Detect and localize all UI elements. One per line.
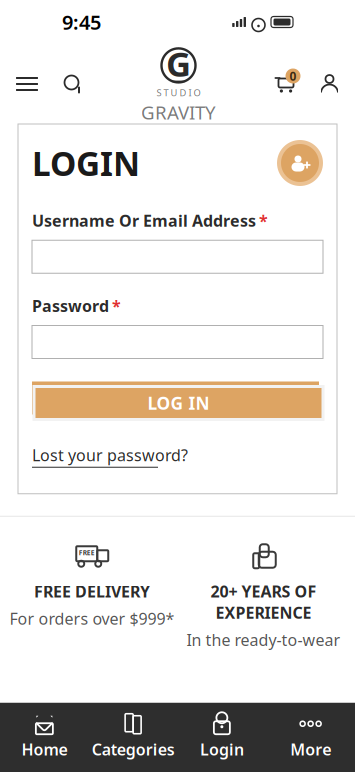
staticText: Login	[200, 739, 244, 760]
button[interactable]: Cart, 0 items	[266, 66, 304, 102]
staticText: Home	[21, 739, 67, 760]
button[interactable]: Studio Gravity home	[141, 43, 216, 125]
staticText: 9:45	[62, 9, 101, 35]
staticText: GRAVITY	[141, 100, 216, 125]
staticText: Username Or Email Address	[32, 210, 256, 231]
staticText: More	[290, 739, 331, 760]
button[interactable]: Login	[177, 703, 266, 772]
staticText: LOG IN	[147, 391, 209, 414]
button[interactable]: Home	[0, 703, 89, 772]
button[interactable]: Register	[277, 140, 323, 186]
staticText: 0	[289, 68, 296, 84]
staticText: FREE DELIVERY	[34, 581, 150, 602]
button[interactable]	[32, 240, 323, 273]
staticText: For orders over $999*	[9, 608, 174, 629]
staticText: *	[259, 210, 268, 231]
staticText: FREE	[79, 548, 95, 557]
staticText: G	[166, 40, 191, 86]
button[interactable]: LOG IN	[34, 386, 323, 419]
staticText: In the ready-to-wear	[186, 629, 340, 650]
button[interactable]: Account	[312, 66, 347, 102]
staticText: LOGIN	[32, 141, 140, 185]
button[interactable]: Menu	[8, 69, 46, 99]
button[interactable]	[32, 325, 323, 358]
staticText: Password	[32, 295, 109, 316]
staticText: 20+ YEARS OF EXPERIENCE	[210, 581, 316, 623]
button[interactable]: Search	[55, 66, 91, 102]
button[interactable]: Lost your password?	[32, 444, 188, 468]
staticText: Lost your password?	[32, 444, 188, 466]
staticText: *	[112, 295, 121, 316]
staticText: Categories	[92, 739, 175, 760]
button[interactable]: Categories	[89, 703, 178, 772]
staticText: S T U D I O	[156, 86, 200, 99]
button[interactable]: More	[266, 703, 355, 772]
